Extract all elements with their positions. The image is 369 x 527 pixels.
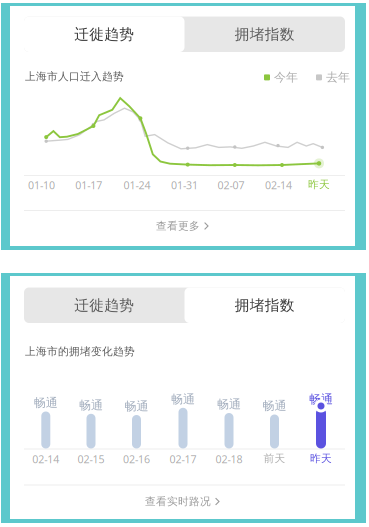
staticText: 畅通 [171, 392, 195, 406]
staticText: 02-18 [215, 452, 242, 466]
staticText: 02-15 [77, 452, 104, 466]
staticText: 昨天 [310, 452, 332, 465]
staticText: 拥堵指数 [235, 25, 295, 43]
staticText: 畅通 [79, 398, 103, 412]
staticText: 01-24 [123, 178, 150, 192]
staticText: 昨天 [308, 178, 330, 191]
staticText: 02-16 [123, 452, 150, 466]
staticText: 上海市人口迁入趋势 [25, 70, 124, 83]
button[interactable]: 迁徙趋势 [24, 287, 184, 323]
staticText: 畅通 [124, 399, 148, 414]
staticText: 畅通 [34, 395, 58, 410]
staticText: 迁徙趋势 [74, 296, 134, 314]
staticText: 01-17 [75, 178, 102, 192]
staticText: 拥堵指数 [235, 296, 295, 314]
staticText: 畅通 [217, 397, 241, 412]
staticText: 今年 [274, 70, 298, 85]
staticText: 02-14 [32, 452, 59, 466]
staticText: 查看实时路况 [145, 495, 211, 508]
button[interactable]: 查看更多 [10, 211, 355, 241]
button[interactable]: 拥堵指数 [184, 287, 345, 323]
button[interactable]: 拥堵指数 [184, 16, 345, 52]
staticText: 去年 [326, 70, 350, 85]
staticText: 畅通 [309, 392, 333, 407]
staticText: 上海市的拥堵变化趋势 [25, 345, 135, 358]
staticText: 迁徙趋势 [74, 25, 134, 43]
staticText: 前天 [263, 452, 285, 465]
staticText: 02-17 [169, 452, 196, 466]
staticText: 01-31 [171, 178, 198, 192]
button[interactable]: 查看实时路况 [10, 485, 355, 517]
staticText: 02-14 [265, 178, 292, 192]
staticText: 查看更多 [156, 219, 200, 232]
button[interactable]: 迁徙趋势 [24, 16, 184, 52]
staticText: 01-10 [28, 178, 55, 192]
staticText: 02-07 [217, 178, 244, 192]
staticText: 畅通 [262, 398, 286, 413]
